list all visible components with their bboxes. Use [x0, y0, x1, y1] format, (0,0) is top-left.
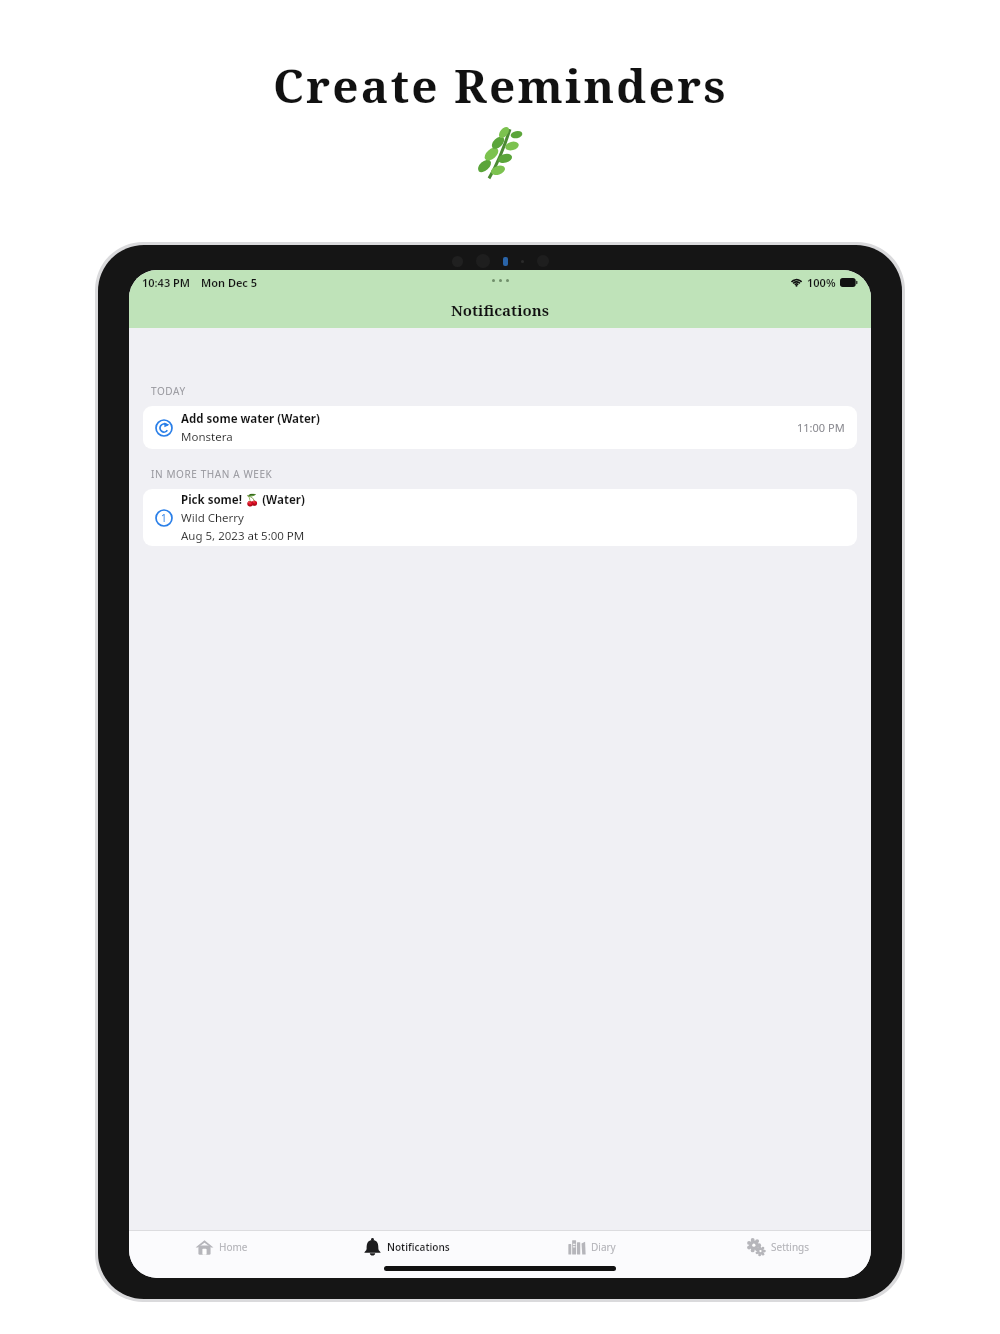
staticText: IN MORE THAN A WEEK — [151, 467, 273, 481]
staticText: 11:00 PM — [797, 420, 845, 435]
staticText: Aug 5, 2023 at 5:00 PM — [181, 528, 305, 544]
staticText: Mon Dec 5 — [201, 275, 258, 290]
staticText: Diary — [591, 1240, 616, 1254]
staticText: Settings — [771, 1240, 810, 1254]
other: One reminder — [155, 509, 173, 527]
staticText: 1 — [161, 511, 167, 525]
staticText: Wild Cherry — [181, 510, 244, 526]
staticText: 100% — [807, 275, 836, 290]
button[interactable]: Notifications — [314, 1231, 499, 1263]
button[interactable]: Home — [129, 1231, 314, 1263]
staticText: Home — [219, 1240, 248, 1254]
staticText: Create Reminders — [273, 54, 728, 117]
staticText: 10:43 PM — [142, 275, 191, 290]
staticText: Add some water (Water) — [181, 411, 320, 427]
other: Recurring reminder — [155, 419, 173, 437]
staticText: Monstera — [181, 429, 233, 445]
staticText: Pick some! 🍒 (Water) — [181, 492, 305, 508]
staticText: Notifications — [387, 1240, 450, 1254]
button[interactable]: One reminder — [143, 489, 857, 546]
staticText: Notifications — [451, 300, 549, 320]
button[interactable]: Recurring reminder — [143, 406, 857, 449]
staticText: TODAY — [151, 384, 186, 398]
button[interactable]: Diary — [499, 1231, 685, 1263]
button[interactable]: Settings — [685, 1231, 871, 1263]
